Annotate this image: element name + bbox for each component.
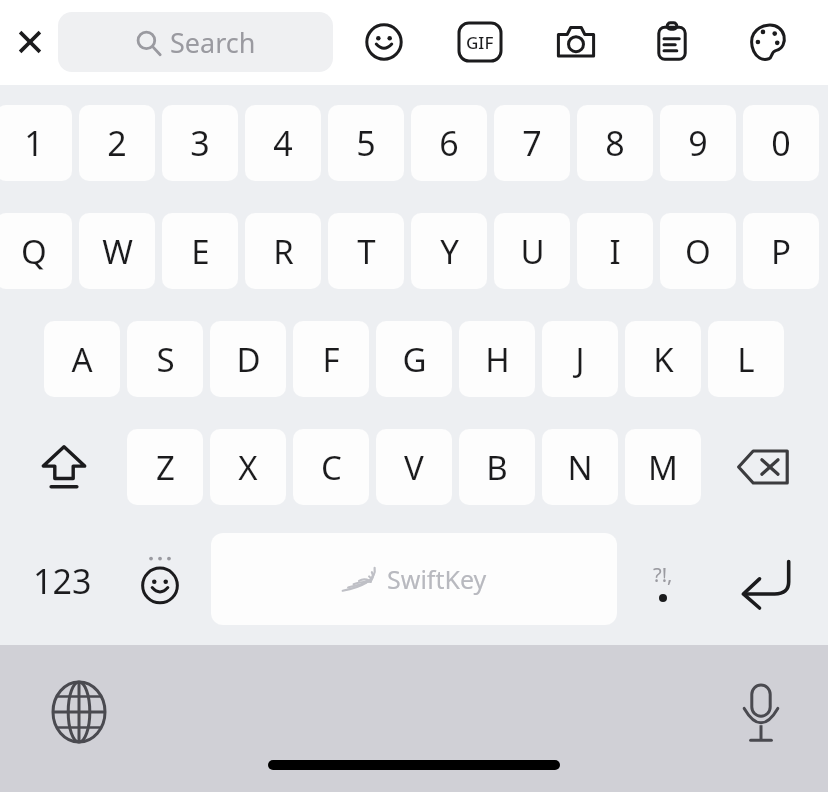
button[interactable]: Emoji keyboard: [116, 537, 204, 625]
staticText: Y: [440, 229, 459, 274]
button[interactable]: Space: [211, 533, 617, 625]
staticText: P: [771, 229, 791, 274]
staticText: C: [321, 445, 342, 490]
button[interactable]: Shift: [14, 429, 114, 505]
button[interactable]: 1: [0, 105, 72, 181]
button[interactable]: D: [210, 321, 286, 397]
button[interactable]: 2: [79, 105, 155, 181]
staticText: 7: [522, 120, 542, 166]
button[interactable]: Q: [0, 213, 72, 289]
staticText: GIF: [466, 31, 494, 54]
button[interactable]: 7: [494, 105, 570, 181]
button[interactable]: C: [293, 429, 369, 505]
button[interactable]: F: [293, 321, 369, 397]
button[interactable]: L: [708, 321, 784, 397]
button[interactable]: GIF: [454, 16, 506, 68]
staticText: H: [485, 337, 510, 382]
button[interactable]: Z: [127, 429, 203, 505]
staticText: 3: [190, 120, 210, 166]
button[interactable]: P: [743, 213, 819, 289]
button[interactable]: Punctuation: [622, 537, 704, 625]
staticText: V: [404, 445, 424, 490]
button[interactable]: 6: [411, 105, 487, 181]
button[interactable]: V: [376, 429, 452, 505]
button[interactable]: B: [459, 429, 535, 505]
staticText: K: [653, 337, 674, 382]
button[interactable]: X: [210, 429, 286, 505]
staticText: 9: [688, 120, 708, 166]
staticText: 2: [107, 120, 127, 166]
staticText: D: [236, 337, 261, 382]
button[interactable]: Search: [58, 12, 333, 72]
button[interactable]: N: [542, 429, 618, 505]
staticText: J: [575, 337, 585, 382]
staticText: Search: [170, 24, 256, 61]
staticText: W: [102, 229, 133, 274]
staticText: R: [273, 229, 294, 274]
button[interactable]: 9: [660, 105, 736, 181]
button[interactable]: Change language: [34, 667, 124, 757]
staticText: T: [357, 229, 376, 274]
button[interactable]: Voice input: [716, 667, 806, 757]
button[interactable]: W: [79, 213, 155, 289]
button[interactable]: Backspace: [714, 429, 814, 505]
staticText: L: [737, 337, 755, 382]
button[interactable]: H: [459, 321, 535, 397]
staticText: 0: [771, 120, 791, 166]
button[interactable]: Clipboard: [646, 16, 698, 68]
staticText: N: [567, 445, 593, 490]
staticText: B: [486, 445, 508, 490]
button[interactable]: Close: [4, 16, 56, 68]
staticText: U: [520, 229, 545, 274]
staticText: A: [71, 337, 93, 382]
staticText: I: [609, 229, 621, 274]
button[interactable]: K: [625, 321, 701, 397]
button[interactable]: 5: [328, 105, 404, 181]
staticText: E: [191, 229, 210, 274]
button[interactable]: 4: [245, 105, 321, 181]
button[interactable]: R: [245, 213, 321, 289]
staticText: F: [322, 337, 340, 382]
staticText: 1: [24, 120, 44, 166]
staticText: SwiftKey: [387, 562, 487, 596]
button[interactable]: Themes: [742, 16, 794, 68]
button[interactable]: I: [577, 213, 653, 289]
staticText: Z: [156, 445, 175, 490]
button[interactable]: Camera: [550, 16, 602, 68]
button[interactable]: E: [162, 213, 238, 289]
button[interactable]: 123: [8, 537, 116, 625]
button[interactable]: M: [625, 429, 701, 505]
button[interactable]: 0: [743, 105, 819, 181]
staticText: 123: [33, 558, 92, 604]
staticText: 8: [605, 120, 625, 166]
staticText: G: [402, 337, 427, 382]
button[interactable]: S: [127, 321, 203, 397]
staticText: 4: [273, 120, 293, 166]
staticText: 6: [439, 120, 459, 166]
button[interactable]: Enter: [716, 537, 816, 625]
button[interactable]: T: [328, 213, 404, 289]
button[interactable]: J: [542, 321, 618, 397]
button[interactable]: 3: [162, 105, 238, 181]
staticText: M: [648, 445, 678, 490]
staticText: O: [685, 229, 711, 274]
button[interactable]: Emoji: [358, 16, 410, 68]
staticText: S: [156, 337, 175, 382]
button[interactable]: Y: [411, 213, 487, 289]
button[interactable]: U: [494, 213, 570, 289]
button[interactable]: O: [660, 213, 736, 289]
staticText: Q: [21, 229, 47, 274]
button[interactable]: 8: [577, 105, 653, 181]
staticText: ?!,: [653, 561, 673, 588]
button[interactable]: A: [44, 321, 120, 397]
staticText: 5: [356, 120, 376, 166]
button[interactable]: G: [376, 321, 452, 397]
staticText: X: [238, 445, 258, 490]
